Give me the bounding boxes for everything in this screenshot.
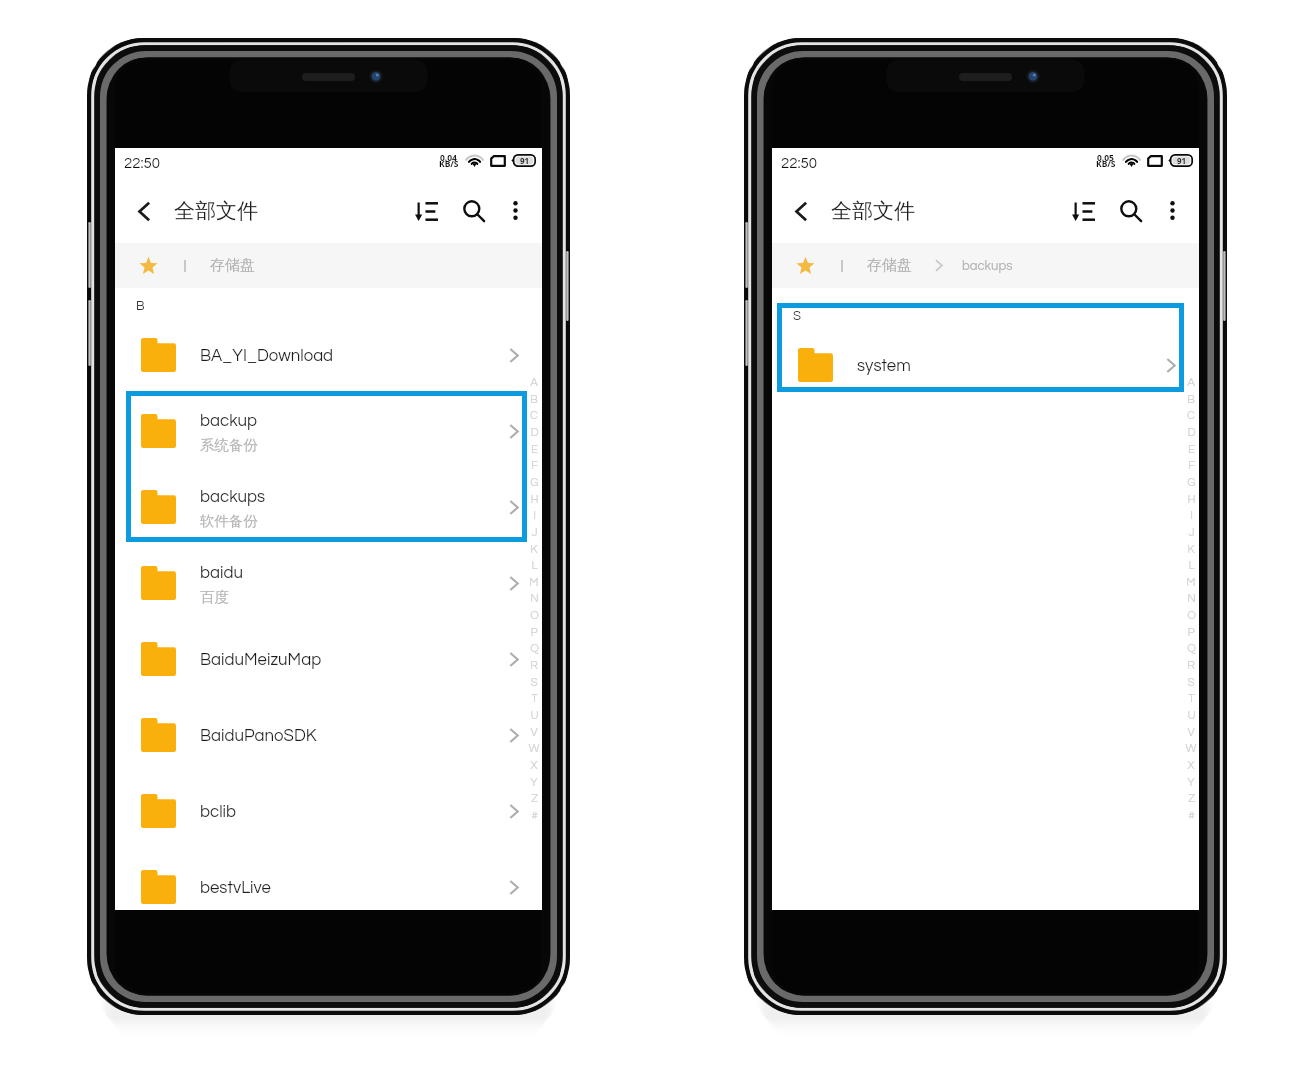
staticText: 91 [520,155,530,166]
staticText: 22:50 [781,156,818,171]
staticText: J [1188,527,1195,539]
staticText: U [530,710,539,722]
staticText: D [1187,427,1196,439]
staticText: M [1186,577,1196,589]
staticText: backup [200,412,258,429]
staticText: S [793,309,801,322]
staticText: V [1187,727,1195,739]
staticText: BA_YI_Download [200,347,334,364]
staticText: L [1188,560,1195,572]
staticText: I [1190,510,1193,522]
staticText: # [1188,810,1195,822]
staticText: BaiduPanoSDK [200,727,317,744]
staticText: H [1187,494,1196,506]
button[interactable]: Back [782,192,820,230]
staticText: baidu [200,564,243,581]
staticText: V [530,727,538,739]
staticText: E [1188,444,1195,456]
staticText: # [531,810,538,822]
staticText: backups [962,259,1013,272]
button[interactable]: Back [125,192,163,230]
staticText: G [530,477,539,489]
staticText: K [530,544,538,556]
staticText: backups [200,488,266,505]
button[interactable]: backups [962,259,1013,272]
staticText: X [530,760,538,772]
button[interactable]: 存储盘 [210,256,255,275]
staticText: B [530,394,538,406]
staticText: P [530,627,538,639]
button[interactable]: More options [501,196,529,224]
staticText: F [1188,460,1195,472]
button[interactable]: More options [1158,196,1186,224]
staticText: 存储盘 [867,256,912,275]
button[interactable]: Favorites [794,254,817,277]
staticText: L [531,560,538,572]
staticText: M [529,577,539,589]
staticText: 全部文件 [174,198,258,224]
staticText: bclib [200,803,237,820]
staticText: 0.05 [1097,152,1114,164]
staticText: X [1187,760,1195,772]
staticText: C [1187,410,1195,422]
button[interactable]: Search [459,196,489,226]
staticText: P [1187,627,1195,639]
button[interactable]: bestvLive [115,849,542,910]
staticText: 存储盘 [210,256,255,275]
staticText: 91 [1177,155,1187,166]
staticText: R [530,660,538,672]
staticText: W [1185,743,1197,755]
staticText: C [530,410,538,422]
staticText: Y [530,777,538,789]
staticText: 22:50 [124,156,161,171]
button[interactable]: Sort [1069,196,1099,226]
button[interactable]: backups [115,469,542,545]
staticText: A [530,377,538,389]
staticText: 全部文件 [831,198,915,224]
staticText: H [530,494,539,506]
staticText: K [1187,544,1195,556]
staticText: O [530,610,539,622]
button[interactable]: Sort [412,196,442,226]
staticText: 0.04 [440,152,457,164]
staticText: KB/S [1096,158,1116,170]
staticText: Q [1187,643,1196,655]
button[interactable]: system [772,327,1199,403]
staticText: N [1187,593,1196,605]
button[interactable]: backup [115,393,542,469]
staticText: KB/S [439,158,459,170]
staticText: Z [531,793,538,805]
staticText: T [1188,693,1195,705]
staticText: D [530,427,539,439]
button[interactable]: BaiduPanoSDK [115,697,542,773]
staticText: B [136,299,145,312]
staticText: U [1187,710,1196,722]
staticText: N [530,593,539,605]
staticText: O [1187,610,1196,622]
staticText: Z [1188,793,1195,805]
button[interactable]: BaiduMeizuMap [115,621,542,697]
button[interactable]: Search [1116,196,1146,226]
staticText: 百度 [200,588,229,606]
button[interactable]: Favorites [137,254,160,277]
staticText: W [528,743,540,755]
staticText: F [531,460,538,472]
button[interactable]: 存储盘 [867,256,912,275]
button[interactable]: baidu [115,545,542,621]
staticText: S [1187,677,1195,689]
staticText: bestvLive [200,879,271,896]
staticText: J [531,527,538,539]
button[interactable]: BA_YI_Download [115,317,542,393]
staticText: T [531,693,538,705]
button[interactable]: bclib [115,773,542,849]
staticText: 系统备份 [200,436,258,454]
staticText: system [857,357,911,374]
staticText: A [1187,377,1195,389]
staticText: I [533,510,536,522]
staticText: B [1187,394,1195,406]
staticText: S [530,677,538,689]
staticText: R [1187,660,1195,672]
staticText: E [531,444,538,456]
staticText: G [1187,477,1196,489]
staticText: 软件备份 [200,512,258,530]
